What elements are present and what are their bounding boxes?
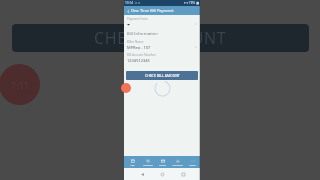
staticText: ▾ ▾ 78% ■ [184, 1, 199, 5]
button[interactable]: Cards [155, 156, 170, 168]
staticText: Bill Information [127, 31, 158, 37]
staticText: 1:11 [11, 79, 29, 91]
button[interactable]: Back [139, 171, 145, 177]
staticText: Cards [159, 163, 166, 166]
staticText: Payment From [127, 17, 148, 21]
button[interactable]: Accounts [170, 156, 185, 168]
staticText: CHECK BILL AMOUNT [145, 73, 180, 78]
staticText: CHECK AMOUNT [94, 27, 227, 49]
button[interactable]: Chat support [121, 83, 131, 93]
staticText: Bill Account Number [127, 53, 156, 57]
staticText: 1234512345 [127, 58, 150, 62]
staticText: Pay [130, 163, 135, 166]
button[interactable]: Recents [180, 171, 186, 177]
button[interactable]: Back [125, 8, 131, 14]
button[interactable]: Pay [124, 156, 140, 168]
staticText: MYReg - 107 [127, 45, 151, 49]
staticText: More [189, 163, 196, 166]
staticText: Accounts [172, 163, 183, 166]
button[interactable]: Transfer [140, 156, 155, 168]
staticText: One Time Bill Payment [131, 8, 174, 13]
button[interactable]: Home [159, 171, 165, 177]
staticText: Biller Name [127, 40, 144, 44]
staticText: 10:14 [125, 1, 134, 5]
staticText: Transfer [143, 163, 153, 166]
button[interactable]: CHECK BILL AMOUNT [126, 71, 198, 80]
button[interactable]: More [185, 156, 200, 168]
